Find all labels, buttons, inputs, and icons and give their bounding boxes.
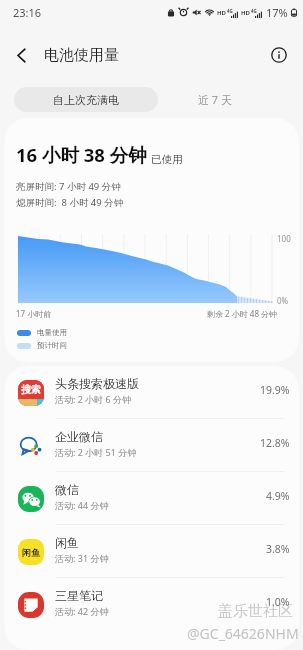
button[interactable]: 自上次充满电	[14, 87, 158, 112]
staticText: 企业微信	[55, 429, 103, 444]
staticText: 盖乐世社区	[218, 602, 293, 621]
staticText: 活动: 42 分钟	[55, 605, 109, 617]
staticText: HD	[241, 9, 250, 17]
staticText: @GC_64626NHM	[187, 624, 299, 643]
staticText: 已使用	[151, 153, 183, 166]
staticText: 搜索	[21, 383, 41, 396]
staticText: 23:16	[13, 5, 42, 20]
staticText: 电池使用量	[44, 46, 119, 65]
staticText: 微信	[55, 482, 79, 497]
staticText: 100	[277, 233, 291, 244]
staticText: 三星笔记	[55, 588, 103, 603]
staticText: 活动: 2 小时 51 分钟	[55, 446, 137, 458]
button[interactable]: 搜索	[0, 366, 303, 419]
staticText: 熄屏时间: 8 小时 49 分钟	[16, 196, 124, 209]
button[interactable]: 微信	[0, 472, 303, 525]
staticText: 剩余 2 小时 48 分钟	[207, 308, 278, 319]
staticText: 活动: 44 分钟	[55, 499, 109, 511]
button[interactable]: 近 7 天	[166, 87, 264, 112]
staticText: 0%	[277, 295, 289, 306]
staticText: 17%	[266, 5, 288, 20]
button[interactable]: Back	[0, 34, 42, 76]
button[interactable]: 企业微信	[0, 419, 303, 472]
staticText: 亮屏时间: 7 小时 49 分钟	[16, 180, 121, 193]
staticText: 4G	[227, 8, 233, 14]
staticText: 4G	[251, 8, 257, 14]
staticText: 闲鱼	[55, 535, 79, 550]
staticText: 1.0%	[266, 595, 290, 609]
staticText: 活动: 31 分钟	[55, 552, 109, 564]
staticText: 电量使用	[37, 328, 67, 337]
staticText: 头条搜索极速版	[55, 376, 139, 391]
staticText: 闲鱼	[22, 547, 40, 558]
button[interactable]: 三星笔记	[0, 578, 303, 631]
staticText: 16 小时 38 分钟	[16, 142, 147, 167]
staticText: 活动: 2 小时 6 分钟	[55, 393, 132, 405]
staticText: 预计时间	[37, 341, 67, 350]
staticText: 17 小时前	[16, 308, 52, 319]
button[interactable]: Information	[261, 37, 297, 73]
staticText: 自上次充满电	[53, 93, 119, 107]
staticText: 4.9%	[266, 489, 290, 503]
staticText: 3.8%	[266, 542, 290, 556]
staticText: HD	[217, 9, 226, 17]
staticText: 19.9%	[260, 383, 290, 397]
staticText: 12.8%	[260, 436, 290, 450]
staticText: 近 7 天	[198, 92, 233, 107]
button[interactable]: 闲鱼	[0, 525, 303, 578]
